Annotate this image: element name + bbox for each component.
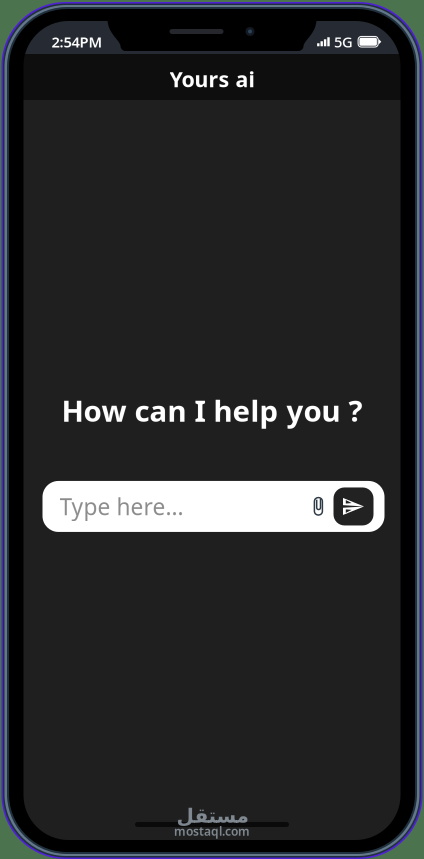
staticText: How can I help you ? [61,391,362,430]
staticText: 5G [334,32,353,51]
staticText: مستقل [176,804,248,827]
button[interactable]: Attach file [303,484,333,528]
staticText: mostaql.com [174,823,250,839]
staticText: Yours ai [169,65,254,93]
button[interactable]: Send [333,487,373,525]
staticText: Type here... [59,491,183,521]
staticText: 2:54PM [51,32,102,51]
